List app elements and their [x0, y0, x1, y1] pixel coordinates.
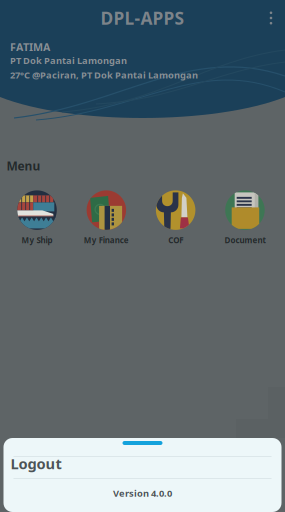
staticText: 27°C @Paciran, PT Dok Pantai Lamongan [10, 69, 198, 81]
staticText: Menu [6, 158, 40, 174]
button[interactable]: My Ship [2, 190, 72, 246]
staticText: Logout [10, 454, 61, 473]
button[interactable]: My Finance [72, 190, 141, 246]
staticText: My Ship [22, 235, 53, 245]
button[interactable]: COF [141, 190, 210, 246]
staticText: Version 4.0.0 [113, 487, 172, 499]
staticText: FATIMA [10, 40, 50, 54]
staticText: My Finance [84, 235, 129, 245]
staticText: COF [168, 235, 183, 245]
staticText: DPL-APPS [100, 6, 184, 29]
staticText: Document [224, 235, 265, 245]
button[interactable]: Logout [3, 457, 281, 478]
button[interactable]: More options [257, 2, 285, 34]
staticText: PT Dok Pantai Lamongan [10, 54, 127, 67]
button[interactable]: Document [210, 190, 280, 246]
